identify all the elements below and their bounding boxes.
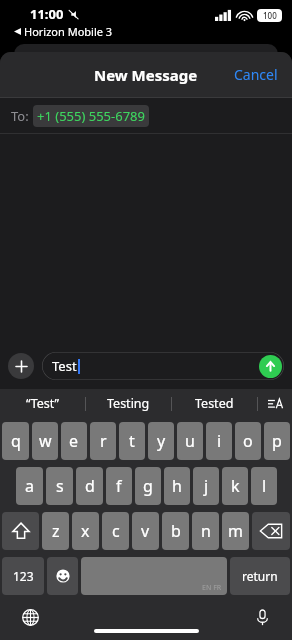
staticText: v [141,520,150,542]
staticText: u [185,430,195,452]
button[interactable]: Testing [86,389,171,418]
button[interactable]: x [72,512,99,550]
button[interactable]: y [148,422,174,460]
button[interactable]: b [162,512,189,550]
button[interactable]: Shift [2,512,39,550]
staticText: Testing [107,395,150,412]
staticText: y [157,430,166,452]
staticText: j [204,475,209,497]
button[interactable]: s [46,467,73,505]
button[interactable]: Emoji [47,557,78,595]
button[interactable]: r [90,422,116,460]
staticText: Test [52,357,77,375]
button[interactable]: Cancel [220,55,292,94]
staticText: i [217,430,222,452]
button[interactable]: To: [0,98,292,133]
staticText: o [243,430,253,452]
button[interactable]: Change keyboard [16,603,44,631]
staticText: f [116,475,122,497]
button[interactable]: c [102,512,129,550]
button[interactable]: Add attachment [8,353,34,379]
staticText: Horizon Mobile 3 [24,24,113,39]
staticText: r [100,430,107,452]
staticText: m [228,520,243,542]
staticText: h [172,475,182,497]
button[interactable]: space [81,557,227,595]
staticText: Tested [195,395,234,412]
staticText: To: [11,107,29,125]
button[interactable]: m [222,512,249,550]
staticText: 11:00 [30,5,64,23]
button[interactable]: Delete [252,512,290,550]
staticText: Cancel [234,65,278,84]
button[interactable]: v [132,512,159,550]
staticText: b [171,520,181,542]
staticText: x [81,520,90,542]
button[interactable]: Test [42,352,284,380]
staticText: q [11,430,21,452]
staticText: “Test” [26,395,60,412]
staticText: s [56,475,64,497]
button[interactable]: Text formatting [258,389,292,418]
staticText: c [112,520,120,542]
button[interactable]: i [206,422,232,460]
staticText: +1 (555) 555-6789 [37,107,145,125]
button[interactable]: h [164,467,190,505]
staticText: 100 [263,10,277,21]
button[interactable]: 123 [2,557,44,595]
button[interactable]: t [119,422,145,460]
staticText: EN FR [202,583,222,593]
button[interactable]: e [61,422,87,460]
button[interactable]: d [76,467,103,505]
button[interactable]: “Test” [0,389,85,418]
staticText: New Message [94,65,198,85]
staticText: l [262,475,267,497]
staticText: g [143,475,153,497]
button[interactable]: Send [259,355,282,378]
staticText: t [129,430,135,452]
button[interactable]: return [230,557,290,595]
button[interactable]: w [32,422,58,460]
button[interactable]: p [264,422,290,460]
button[interactable]: g [135,467,161,505]
button[interactable]: z [42,512,69,550]
staticText: n [201,520,211,542]
staticText: a [25,475,34,497]
button[interactable]: k [222,467,248,505]
staticText: 123 [13,568,34,584]
button[interactable]: Tested [172,389,257,418]
button[interactable]: l [251,467,277,505]
button[interactable]: f [106,467,132,505]
button[interactable]: j [193,467,219,505]
staticText: return [242,568,278,584]
staticText: w [39,430,52,452]
button[interactable]: n [192,512,219,550]
button[interactable]: q [2,422,29,460]
button[interactable]: o [235,422,261,460]
staticText: k [231,475,240,497]
staticText: z [52,520,60,542]
staticText: d [85,475,95,497]
button[interactable]: u [177,422,203,460]
button[interactable]: Dictation [248,603,276,631]
staticText: e [69,430,79,452]
button[interactable]: a [16,467,43,505]
staticText: p [272,430,282,452]
